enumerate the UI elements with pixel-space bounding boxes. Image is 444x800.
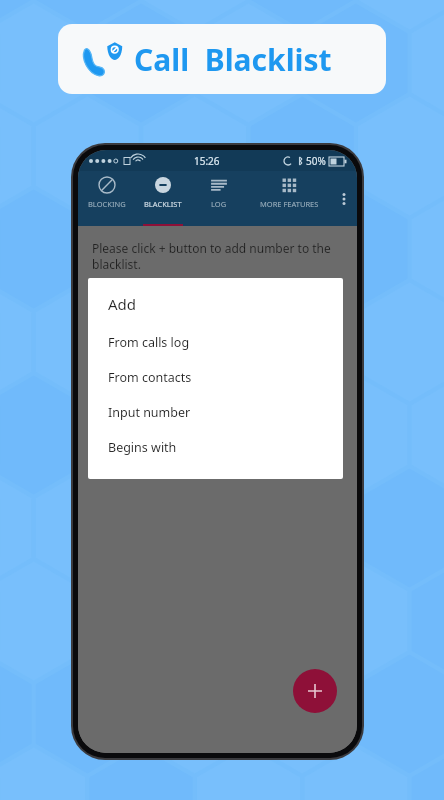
staticText: BLOCKING — [88, 199, 126, 209]
button[interactable]: BLACKLIST — [135, 171, 191, 226]
staticText: MORE FEATURES — [260, 199, 319, 209]
button[interactable]: From contacts — [88, 360, 343, 395]
staticText: Input number — [108, 404, 191, 421]
staticText: Please click + button to add number to t… — [92, 240, 331, 273]
staticText: Add — [108, 294, 137, 314]
button[interactable]: From calls log — [88, 325, 343, 360]
button[interactable]: More options — [331, 171, 357, 226]
staticText: Call Blacklist — [134, 39, 332, 80]
staticText: From contacts — [108, 369, 192, 386]
staticText: LOG — [211, 199, 227, 209]
staticText: 15:26 — [194, 154, 220, 168]
button[interactable]: Begins with — [88, 430, 343, 465]
staticText: BLACKLIST — [144, 199, 182, 209]
button[interactable]: BLOCKING — [78, 171, 135, 226]
staticText: Begins with — [108, 439, 177, 456]
button[interactable]: LOG — [191, 171, 247, 226]
button[interactable]: Input number — [88, 395, 343, 430]
staticText: From calls log — [108, 334, 190, 351]
staticText: 50% — [306, 154, 326, 168]
button[interactable]: MORE FEATURES — [247, 171, 331, 226]
button[interactable]: Add number — [293, 669, 337, 713]
